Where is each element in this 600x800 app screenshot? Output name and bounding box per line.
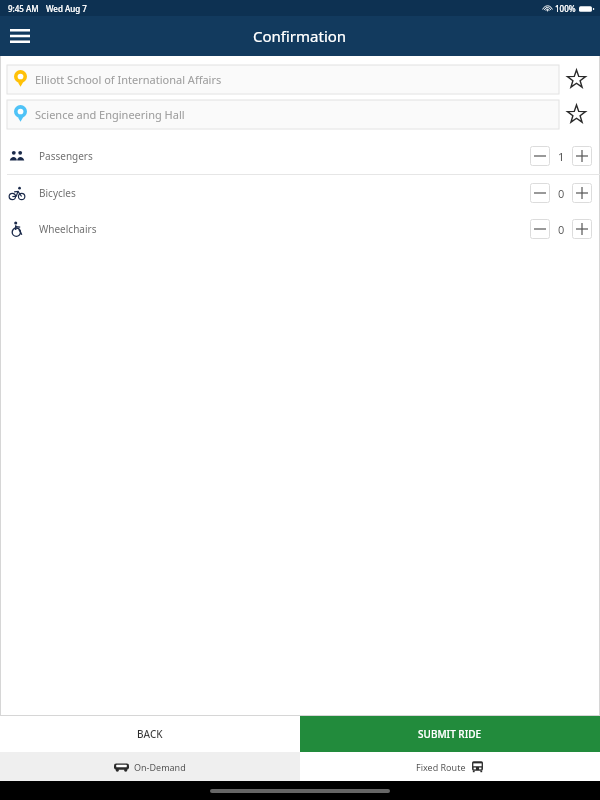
staticText: Elliott School of International Affairs	[35, 72, 222, 87]
staticText: On-Demand	[134, 761, 186, 773]
staticText: 100%	[555, 3, 576, 14]
button[interactable]: On-Demand	[0, 752, 300, 781]
staticText: 0	[558, 222, 565, 237]
button[interactable]: Passengers	[8, 138, 592, 174]
staticText: 0	[558, 186, 565, 201]
button[interactable]: Decrease Passengers	[530, 146, 550, 166]
button[interactable]: SUBMIT RIDE	[300, 716, 600, 752]
button[interactable]: Open navigation menu	[0, 16, 40, 56]
button[interactable]: Decrease Bicycles	[530, 183, 550, 203]
staticText: SUBMIT RIDE	[418, 727, 482, 741]
button[interactable]: Increase Bicycles	[572, 183, 592, 203]
button[interactable]: Save destination as favorite	[559, 100, 593, 129]
staticText: 1	[558, 149, 565, 164]
button[interactable]: Fixed Route	[300, 752, 600, 781]
staticText: Bicycles	[39, 186, 76, 200]
button[interactable]: Increase Wheelchairs	[572, 219, 592, 239]
button[interactable]: Save origin as favorite	[559, 65, 593, 94]
staticText: Wed Aug 7	[46, 3, 87, 14]
button[interactable]: BACK	[0, 716, 300, 752]
button[interactable]: Science and Engineering Hall	[7, 100, 559, 129]
staticText: Confirmation	[253, 26, 347, 46]
button[interactable]: Wheelchairs	[8, 211, 592, 247]
button[interactable]: Elliott School of International Affairs	[7, 65, 559, 94]
button[interactable]: Bicycles	[8, 175, 592, 211]
button[interactable]: Decrease Wheelchairs	[530, 219, 550, 239]
staticText: Science and Engineering Hall	[35, 107, 185, 122]
staticText: Fixed Route	[416, 761, 466, 773]
staticText: 9:45 AM	[8, 3, 39, 14]
staticText: BACK	[137, 727, 163, 741]
staticText: Wheelchairs	[39, 222, 97, 236]
button[interactable]: Increase Passengers	[572, 146, 592, 166]
staticText: Passengers	[39, 149, 93, 163]
